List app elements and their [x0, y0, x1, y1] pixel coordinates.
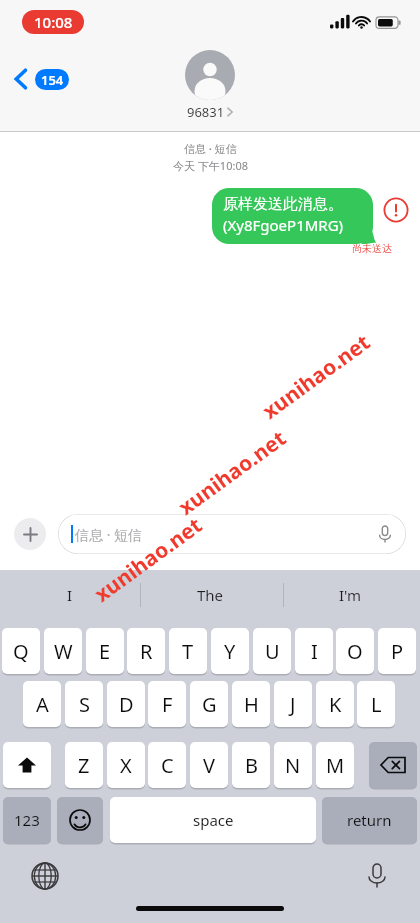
- button[interactable]: Y: [211, 628, 249, 674]
- staticText: L: [371, 691, 382, 718]
- button[interactable]: I'm: [280, 570, 420, 620]
- button[interactable]: 96831: [185, 50, 235, 121]
- button[interactable]: 信息 · 短信: [58, 514, 406, 554]
- staticText: D: [119, 691, 134, 718]
- button[interactable]: N: [274, 742, 312, 788]
- button[interactable]: W: [44, 628, 82, 674]
- staticText: 10:08: [34, 12, 73, 32]
- staticText: return: [347, 810, 392, 830]
- staticText: 尚未送达: [352, 242, 392, 255]
- button[interactable]: F: [148, 681, 186, 727]
- button[interactable]: Add attachment: [14, 518, 46, 550]
- button[interactable]: S: [65, 681, 103, 727]
- button[interactable]: O: [336, 628, 374, 674]
- staticText: 123: [14, 810, 40, 830]
- staticText: xunihao.net: [257, 327, 376, 425]
- button[interactable]: Back, 154 unread: [8, 64, 75, 94]
- staticText: A: [36, 691, 49, 718]
- staticText: X: [120, 752, 132, 779]
- button[interactable]: I: [0, 570, 140, 620]
- button[interactable]: L: [357, 681, 395, 727]
- button[interactable]: Z: [65, 742, 103, 788]
- button[interactable]: X: [107, 742, 145, 788]
- staticText: 信息 · 短信: [75, 525, 143, 544]
- button[interactable]: Not delivered, tap to retry: [383, 197, 409, 223]
- staticText: 原样发送此消息。: [223, 195, 343, 214]
- staticText: M: [326, 752, 345, 779]
- staticText: K: [329, 691, 342, 718]
- button[interactable]: P: [378, 628, 416, 674]
- staticText: Q: [13, 638, 29, 665]
- button[interactable]: Backspace: [369, 742, 417, 788]
- button[interactable]: 123: [3, 797, 51, 843]
- button[interactable]: Emoji: [57, 797, 103, 843]
- staticText: space: [193, 810, 234, 830]
- button[interactable]: M: [316, 742, 354, 788]
- button[interactable]: Change keyboard: [30, 861, 60, 891]
- staticText: U: [265, 638, 280, 665]
- button[interactable]: J: [274, 681, 312, 727]
- button[interactable]: The: [140, 570, 280, 620]
- staticText: xunihao.net: [173, 423, 292, 521]
- staticText: S: [79, 691, 90, 718]
- button[interactable]: space: [110, 797, 316, 843]
- staticText: R: [140, 638, 153, 665]
- button[interactable]: D: [107, 681, 145, 727]
- staticText: B: [245, 752, 258, 779]
- staticText: 154: [41, 71, 64, 89]
- button[interactable]: U: [253, 628, 291, 674]
- button[interactable]: 原样发送此消息。: [212, 188, 378, 244]
- staticText: The: [197, 585, 224, 605]
- staticText: H: [244, 691, 259, 718]
- staticText: G: [202, 691, 217, 718]
- staticText: P: [391, 638, 404, 665]
- button[interactable]: T: [169, 628, 207, 674]
- button[interactable]: Q: [2, 628, 40, 674]
- staticText: (Xy8FgoeP1MRG): [223, 215, 344, 235]
- button[interactable]: H: [232, 681, 270, 727]
- staticText: 信息 · 短信: [184, 141, 237, 156]
- staticText: Y: [224, 638, 236, 665]
- button[interactable]: C: [148, 742, 186, 788]
- button[interactable]: E: [86, 628, 124, 674]
- button[interactable]: R: [127, 628, 165, 674]
- staticText: 今天 下午10:08: [173, 158, 248, 173]
- button[interactable]: Shift: [3, 742, 51, 788]
- button[interactable]: A: [23, 681, 61, 727]
- staticText: T: [182, 638, 194, 665]
- staticText: I: [67, 585, 73, 605]
- staticText: xunihao.net: [89, 510, 208, 608]
- staticText: I: [311, 638, 318, 665]
- button[interactable]: K: [316, 681, 354, 727]
- staticText: O: [347, 638, 363, 665]
- staticText: 96831: [187, 103, 225, 121]
- staticText: W: [54, 638, 73, 665]
- staticText: E: [99, 638, 111, 665]
- button[interactable]: V: [190, 742, 228, 788]
- staticText: Z: [78, 752, 90, 779]
- staticText: C: [161, 752, 174, 779]
- button[interactable]: B: [232, 742, 270, 788]
- staticText: F: [162, 691, 173, 718]
- button[interactable]: Dictate: [374, 523, 396, 545]
- button[interactable]: return: [322, 797, 417, 843]
- staticText: I'm: [339, 585, 362, 605]
- button[interactable]: G: [190, 681, 228, 727]
- staticText: N: [285, 752, 301, 779]
- staticText: V: [203, 752, 215, 779]
- button[interactable]: I: [295, 628, 333, 674]
- staticText: J: [290, 691, 296, 718]
- button[interactable]: Dictation: [362, 860, 392, 890]
